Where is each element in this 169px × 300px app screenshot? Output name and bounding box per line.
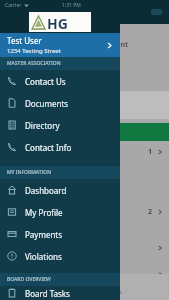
button[interactable]: Directory (0, 114, 120, 136)
staticText: Account Info (14, 71, 50, 79)
button[interactable]: 3 (0, 273, 169, 274)
button[interactable]: 1 (0, 141, 169, 163)
button[interactable]: 2 (0, 201, 169, 223)
button[interactable] (0, 123, 169, 141)
staticText: Board Tasks (25, 288, 70, 299)
button[interactable]: Contact Us (0, 70, 120, 92)
staticText: Payments (25, 229, 63, 240)
staticText: Contact Info (25, 142, 72, 153)
staticText: Directory (25, 120, 60, 131)
staticText: MASTER ASSOCIATION (7, 60, 61, 67)
button[interactable]: My Profile (0, 201, 120, 223)
staticText: My Profile (25, 207, 63, 218)
staticText: Test User (7, 35, 42, 46)
staticText: Documents (95, 289, 122, 296)
staticText: Contact Us (25, 76, 66, 87)
button[interactable]: Documents (95, 278, 122, 296)
button[interactable]: Contact Info (0, 136, 120, 158)
button[interactable]: Documents (0, 92, 120, 114)
staticText: Add Account (84, 40, 129, 50)
button[interactable]: Violations (0, 245, 120, 267)
staticText: 1:31 PM (62, 2, 81, 9)
staticText: Dashboard (25, 185, 67, 196)
button[interactable]: Dashboard (0, 179, 120, 201)
button[interactable] (0, 237, 169, 259)
staticText: Carrier (5, 2, 22, 9)
button[interactable]: Account Info (8, 68, 118, 81)
button[interactable]: Payments (0, 223, 120, 245)
staticText: Violations (25, 251, 62, 262)
button[interactable]: Test User (0, 33, 120, 57)
button[interactable]: Board Tasks (0, 286, 120, 300)
staticText: 1 (148, 147, 153, 157)
staticText: HG (47, 14, 68, 30)
staticText: Documents (25, 98, 69, 109)
staticText: BOARD OVERVIEW (7, 276, 51, 283)
staticText: MY INFORMATION (7, 169, 52, 176)
staticText: 2 (148, 207, 153, 217)
staticText: 1234 Testing Street (7, 47, 61, 55)
